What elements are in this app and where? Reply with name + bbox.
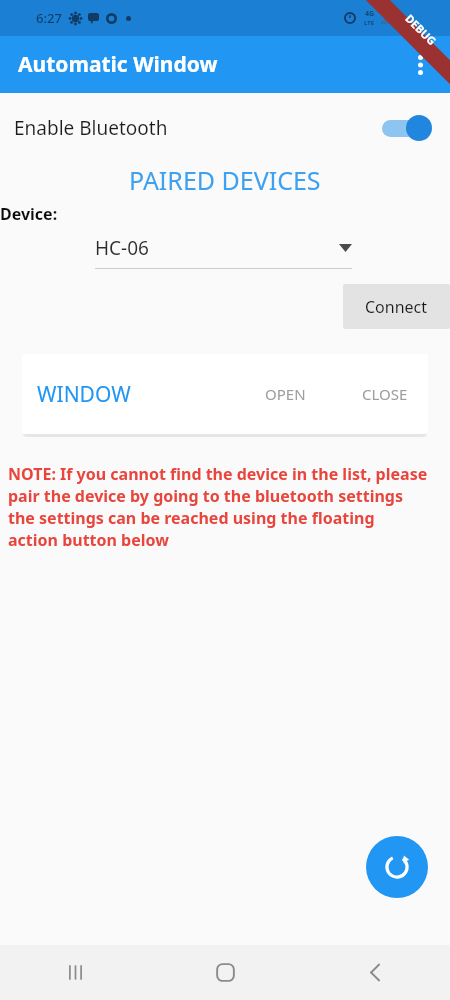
staticText: HC-06 <box>95 235 149 261</box>
staticText: Device: <box>0 203 58 225</box>
staticText: OPEN <box>265 384 306 404</box>
staticText: 6:27 <box>36 9 62 27</box>
staticText: DEBUG <box>402 11 440 48</box>
staticText: NOTE: If you cannot find the device in t… <box>8 463 428 551</box>
staticText: 4G <box>365 9 375 19</box>
staticText: Connect <box>365 296 428 318</box>
staticText: Automatic Window <box>18 50 218 79</box>
button[interactable]: CLOSE <box>348 374 422 414</box>
button[interactable]: OPEN <box>251 374 320 414</box>
button[interactable]: WINDOW <box>22 380 131 409</box>
button[interactable]: More options <box>400 45 440 85</box>
button[interactable]: Back <box>300 945 450 1000</box>
button[interactable]: Recent apps <box>0 945 150 1000</box>
staticText: Enable Bluetooth <box>14 115 168 141</box>
button[interactable]: Refresh paired devices <box>366 836 428 898</box>
staticText: PAIRED DEVICES <box>129 163 321 197</box>
staticText: LTE <box>364 19 375 27</box>
button[interactable]: Enable Bluetooth <box>0 107 450 149</box>
button[interactable]: Home <box>150 945 300 1000</box>
button[interactable]: Connect <box>343 284 450 329</box>
staticText: CLOSE <box>362 384 408 404</box>
button[interactable]: HC-06 <box>95 235 352 269</box>
